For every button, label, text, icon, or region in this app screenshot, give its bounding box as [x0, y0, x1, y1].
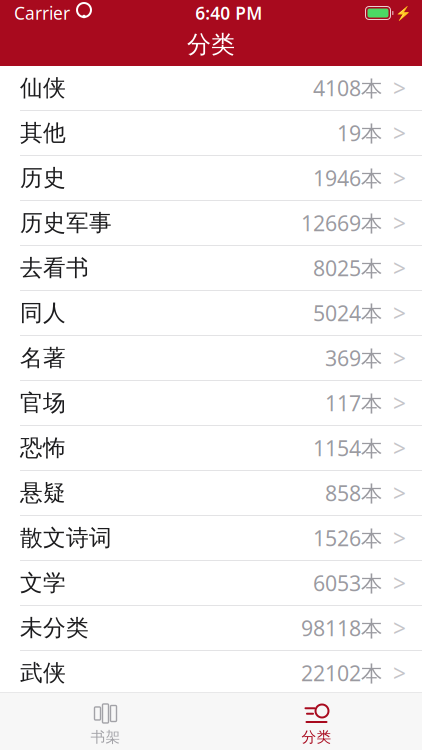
- staticText: 33210本: [301, 704, 382, 732]
- staticText: >: [393, 253, 406, 283]
- staticText: 22102本: [301, 659, 382, 687]
- staticText: 858本: [325, 479, 382, 507]
- staticText: ⚡: [395, 5, 412, 21]
- staticText: >: [393, 73, 406, 103]
- staticText: >: [393, 343, 406, 373]
- button[interactable]: 悬疑: [0, 471, 422, 516]
- button[interactable]: 名著: [0, 336, 422, 381]
- staticText: 历史: [20, 164, 66, 192]
- staticText: 历史军事: [20, 209, 112, 237]
- staticText: 1946本: [313, 164, 382, 192]
- staticText: 书架: [90, 728, 120, 746]
- button[interactable]: 历史: [0, 156, 422, 201]
- staticText: 武侠: [20, 659, 66, 687]
- button[interactable]: 恐怖: [0, 426, 422, 471]
- staticText: 悬疑: [20, 479, 66, 507]
- button[interactable]: 其他: [0, 111, 422, 156]
- staticText: 4108本: [313, 74, 382, 102]
- staticText: 其他: [20, 119, 66, 147]
- button[interactable]: 同人: [0, 291, 422, 336]
- staticText: >: [393, 298, 406, 328]
- button[interactable]: 散文诗词: [0, 516, 422, 561]
- staticText: 98118本: [301, 614, 382, 642]
- staticText: 同人: [20, 299, 66, 327]
- staticText: 分类: [301, 728, 331, 746]
- staticText: 5024本: [313, 299, 382, 327]
- staticText: Carrier: [14, 1, 70, 24]
- button[interactable]: 未分类: [0, 606, 422, 651]
- button[interactable]: 书架: [0, 693, 211, 750]
- staticText: >: [393, 613, 406, 643]
- button[interactable]: 分类: [211, 693, 422, 750]
- staticText: >: [393, 658, 406, 688]
- staticText: 分类: [187, 30, 235, 59]
- staticText: 仙侠: [20, 74, 66, 102]
- staticText: 文学: [20, 569, 66, 597]
- button[interactable]: 玄幻: [0, 696, 422, 741]
- button[interactable]: 历史军事: [0, 201, 422, 246]
- staticText: 恐怖: [20, 434, 66, 462]
- staticText: 未分类: [20, 614, 89, 642]
- staticText: 117本: [325, 389, 382, 417]
- button[interactable]: 文学: [0, 561, 422, 606]
- button[interactable]: 官场: [0, 381, 422, 426]
- staticText: 6053本: [313, 569, 382, 597]
- staticText: 12669本: [301, 209, 382, 237]
- staticText: 去看书: [20, 254, 89, 282]
- staticText: >: [393, 478, 406, 508]
- button[interactable]: 武侠: [0, 651, 422, 696]
- button[interactable]: 科幻: [0, 741, 422, 750]
- staticText: >: [393, 433, 406, 463]
- staticText: >: [393, 118, 406, 148]
- staticText: 8025本: [313, 254, 382, 282]
- staticText: >: [393, 568, 406, 598]
- staticText: >: [393, 163, 406, 193]
- staticText: >: [393, 523, 406, 553]
- staticText: 官场: [20, 389, 66, 417]
- button[interactable]: 仙侠: [0, 66, 422, 111]
- staticText: 1154本: [313, 434, 382, 462]
- staticText: 1526本: [313, 524, 382, 552]
- staticText: >: [393, 388, 406, 418]
- staticText: >: [393, 208, 406, 238]
- button[interactable]: 去看书: [0, 246, 422, 291]
- staticText: 19本: [337, 119, 382, 147]
- staticText: 369本: [325, 344, 382, 372]
- staticText: 名著: [20, 344, 66, 372]
- staticText: 散文诗词: [20, 524, 112, 552]
- staticText: 6:40 PM: [195, 1, 262, 24]
